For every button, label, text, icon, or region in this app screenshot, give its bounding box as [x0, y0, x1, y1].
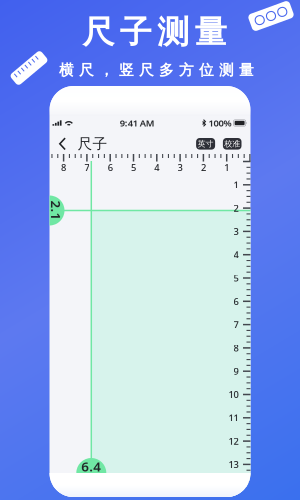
staticText: 13 — [228, 458, 238, 471]
staticText: 8 — [61, 161, 66, 174]
staticText: 尺子测量 — [82, 12, 227, 52]
staticText: 4 — [154, 161, 159, 174]
staticText: 2 — [233, 202, 238, 214]
staticText: 5 — [233, 272, 238, 284]
button[interactable]: 英寸 — [196, 138, 215, 150]
staticText: 11 — [228, 412, 238, 424]
staticText: 9:41 AM — [120, 117, 155, 129]
staticText: 7 — [84, 161, 89, 174]
staticText: 8 — [233, 342, 238, 354]
staticText: 9 — [233, 365, 238, 377]
staticText: 6 — [233, 295, 238, 307]
staticText: 6 — [108, 161, 113, 174]
staticText: 10 — [228, 388, 238, 401]
staticText: 1 — [233, 179, 238, 191]
staticText: 英寸 — [198, 139, 214, 149]
staticText: 3 — [178, 161, 183, 174]
staticText: 2 — [201, 161, 206, 174]
staticText: 2.1 — [46, 202, 66, 219]
staticText: 100% — [208, 117, 231, 129]
staticText: 尺子 — [77, 135, 107, 153]
staticText: 12 — [228, 435, 238, 447]
staticText: 1 — [224, 161, 229, 174]
button[interactable]: Back — [57, 133, 71, 154]
staticText: 5 — [131, 161, 136, 174]
staticText: 3 — [233, 225, 238, 238]
staticText: 4 — [233, 248, 238, 261]
staticText: 横尺，竖尺多方位测量 — [59, 61, 254, 79]
staticText: 校准 — [224, 139, 240, 149]
staticText: 6.4 — [81, 457, 101, 475]
button[interactable]: 校准 — [223, 138, 241, 150]
staticText: 7 — [233, 318, 238, 331]
